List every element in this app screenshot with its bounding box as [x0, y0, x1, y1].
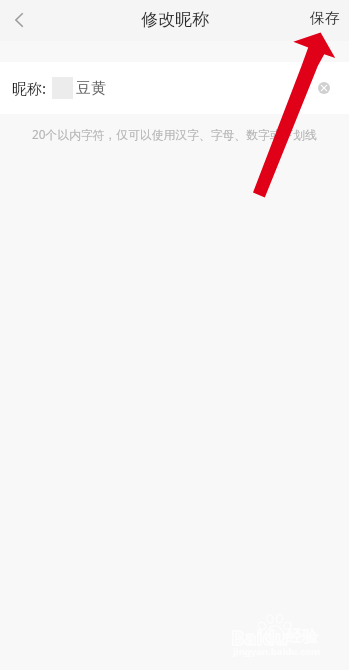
- staticText: 修改昵称: [141, 9, 209, 30]
- button[interactable]: Back: [0, 0, 39, 40]
- staticText: 豆黄: [76, 79, 106, 98]
- button[interactable]: 保存: [298, 1, 349, 36]
- button[interactable]: 昵称:: [0, 62, 349, 114]
- button[interactable]: Clear text: [312, 76, 336, 100]
- staticText: 20个以内字符，仅可以使用汉字、字母、数字或下划线: [0, 126, 349, 142]
- staticText: 保存: [310, 9, 340, 28]
- staticText: 昵称:: [12, 78, 47, 98]
